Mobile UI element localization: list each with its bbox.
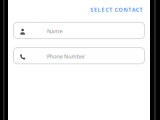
- button[interactable]: Phone Number: [13, 48, 144, 64]
- staticText: Name: [47, 28, 62, 35]
- staticText: SELECT CONTACT: [90, 6, 143, 13]
- staticText: Phone Number: [47, 53, 85, 60]
- button[interactable]: Name: [13, 22, 144, 39]
- button[interactable]: SELECT CONTACT: [90, 6, 143, 13]
